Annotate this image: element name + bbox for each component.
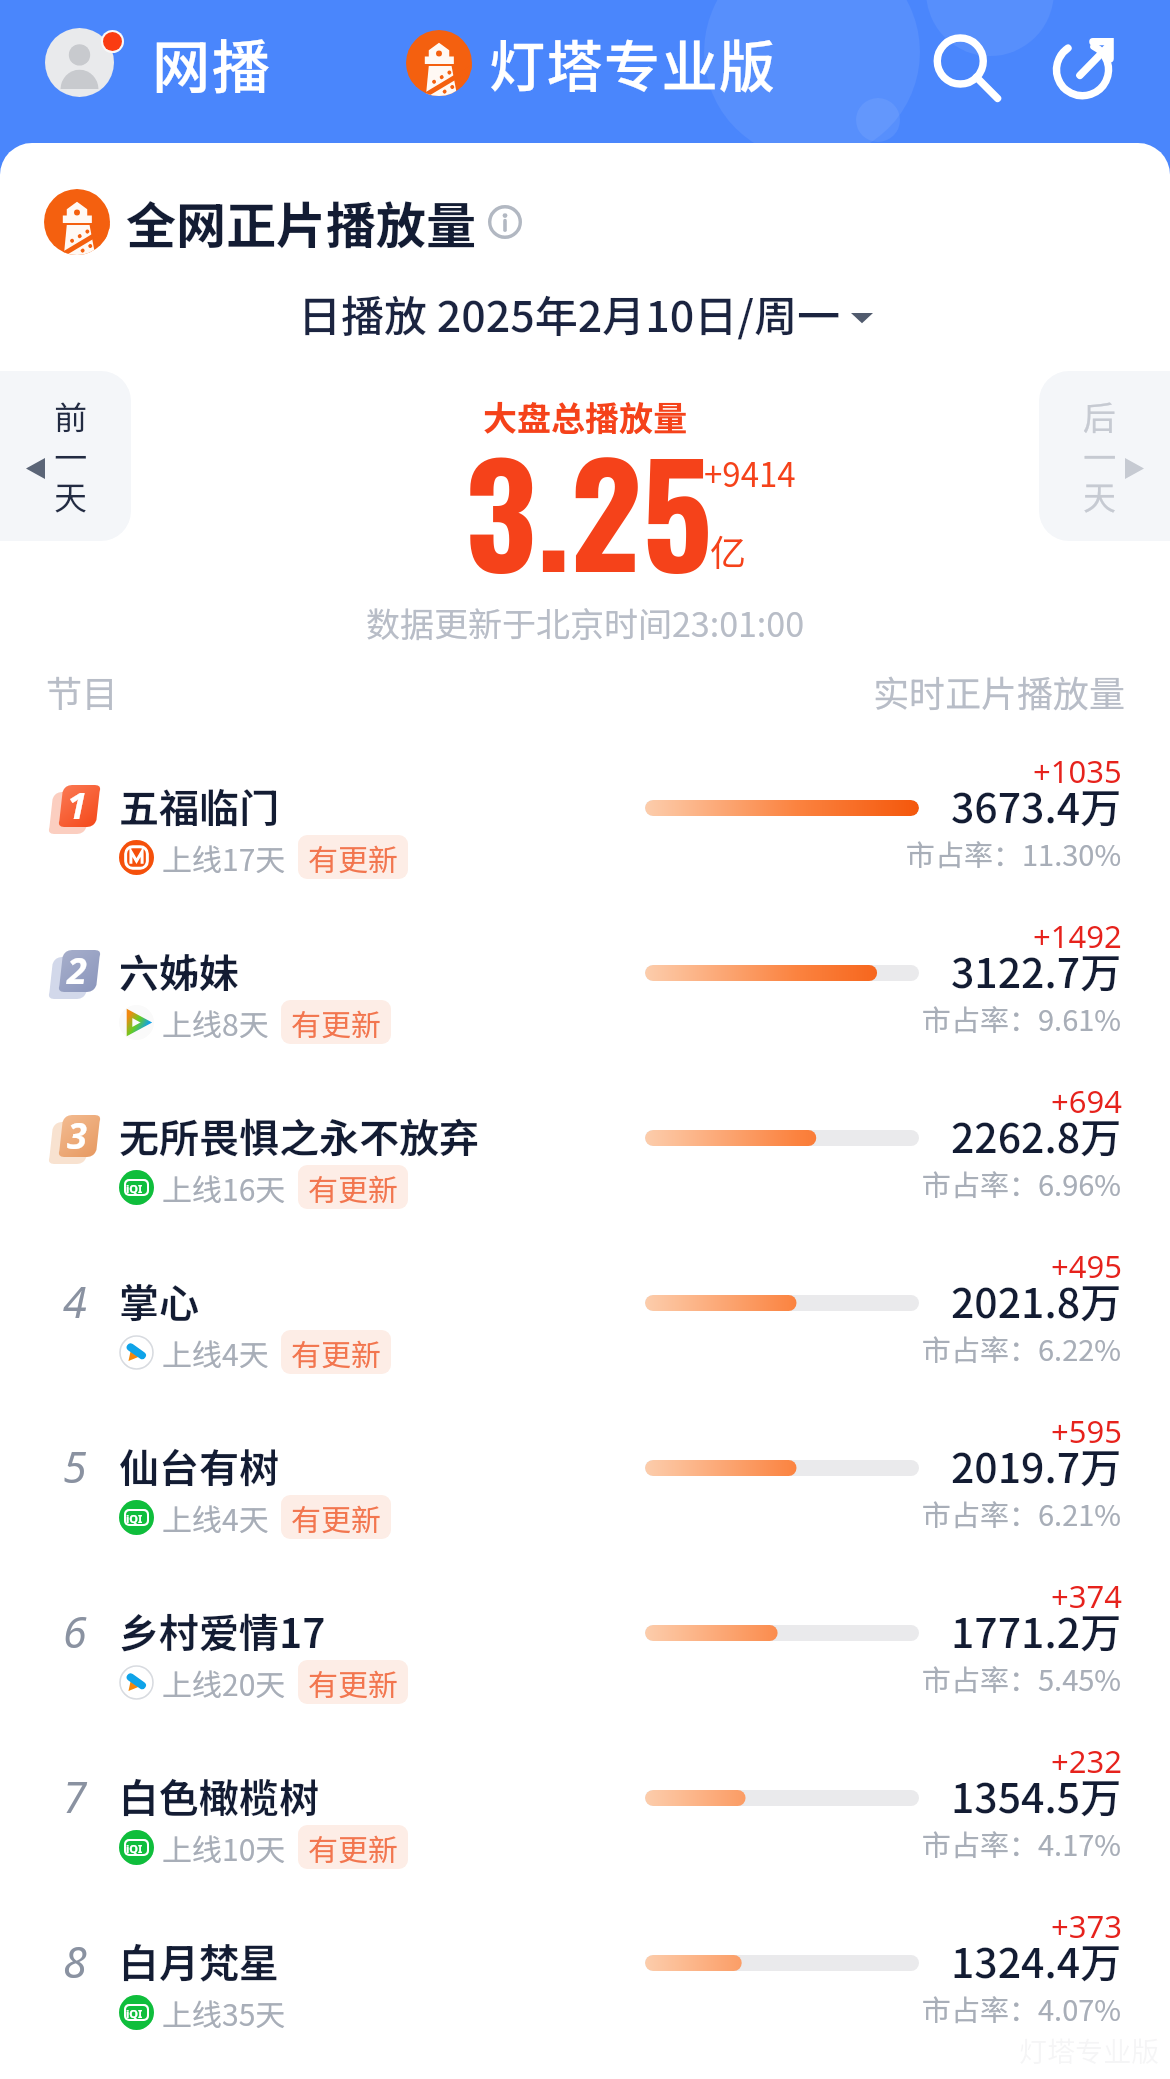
staticText: 有更新 — [308, 1826, 398, 1869]
staticText: 市占率：11.30% — [906, 832, 1122, 874]
button[interactable]: 1 — [0, 760, 1170, 925]
staticText: 后 一 天 — [1083, 392, 1116, 520]
staticText: 6 — [63, 1602, 87, 1661]
staticText: 日播放 2025年2月10日/周一 — [298, 282, 841, 344]
staticText: 全网正片播放量 — [126, 186, 476, 258]
staticText: 市占率：4.07% — [922, 1987, 1122, 2029]
button[interactable]: 6 — [0, 1585, 1170, 1750]
staticText: 六姊妹 — [119, 942, 239, 1000]
button[interactable]: Share — [1045, 26, 1125, 106]
staticText: 3122.7万 — [951, 940, 1122, 999]
staticText: +374 — [1051, 1575, 1122, 1617]
staticText: 大盘总播放量 — [0, 392, 1170, 441]
staticText: 上线4天 — [162, 1496, 269, 1539]
staticText: 白月梵星 — [119, 1932, 279, 1990]
staticText: iQIY — [126, 1841, 147, 1854]
button[interactable]: 2 — [0, 925, 1170, 1090]
staticText: 有更新 — [308, 836, 398, 879]
staticText: 上线35天 — [162, 1991, 286, 2034]
staticText: 掌心 — [119, 1272, 199, 1330]
button[interactable]: 8 — [0, 1915, 1170, 2079]
button[interactable]: 7 — [0, 1750, 1170, 1915]
staticText: 节目 — [46, 665, 119, 717]
staticText: 白色橄榄树 — [119, 1767, 319, 1825]
staticText: 市占率：5.45% — [922, 1657, 1122, 1699]
button[interactable]: 日播放 2025年2月10日/周一 — [0, 282, 1170, 344]
staticText: 市占率：6.96% — [922, 1162, 1122, 1204]
staticText: 有更新 — [308, 1661, 398, 1704]
staticText: 仙台有树 — [119, 1437, 279, 1495]
staticText: 市占率：6.22% — [922, 1327, 1122, 1369]
staticText: 灯塔专业版 — [1019, 2030, 1160, 2071]
staticText: 3 — [67, 1111, 87, 1160]
staticText: 3673.4万 — [951, 775, 1122, 834]
staticText: 五福临门 — [119, 777, 279, 835]
button[interactable]: Search — [924, 26, 1004, 106]
staticText: 2 — [67, 946, 87, 995]
staticText: 2021.8万 — [951, 1270, 1122, 1329]
staticText: 上线4天 — [162, 1331, 269, 1374]
staticText: 1354.5万 — [951, 1765, 1122, 1824]
staticText: +232 — [1051, 1740, 1122, 1782]
button[interactable]: 后 一 天 — [1039, 371, 1170, 541]
staticText: 8 — [63, 1932, 87, 1991]
staticText: 上线17天 — [162, 836, 286, 879]
staticText: +495 — [1051, 1245, 1122, 1287]
staticText: +373 — [1051, 1905, 1122, 1947]
staticText: 实时正片播放量 — [873, 665, 1126, 717]
staticText: 有更新 — [291, 1331, 381, 1374]
staticText: 2019.7万 — [951, 1435, 1122, 1494]
staticText: 无所畏惧之永不放弃 — [119, 1107, 479, 1165]
staticText: iQIY — [126, 1511, 147, 1524]
staticText: 有更新 — [291, 1496, 381, 1539]
staticText: +9414 — [704, 449, 796, 497]
staticText: 市占率：4.17% — [922, 1822, 1122, 1864]
staticText: 3.25 — [465, 406, 713, 612]
staticText: 7 — [63, 1767, 87, 1826]
staticText: 上线10天 — [162, 1826, 286, 1869]
staticText: iQIY — [126, 2006, 147, 2019]
button[interactable]: 前 一 天 — [0, 371, 131, 541]
staticText: 上线16天 — [162, 1166, 286, 1209]
staticText: 1 — [67, 781, 87, 830]
staticText: 1324.4万 — [951, 1930, 1122, 1989]
staticText: 前 一 天 — [54, 392, 87, 520]
staticText: +595 — [1051, 1410, 1122, 1452]
staticText: 上线20天 — [162, 1661, 286, 1704]
staticText: 4 — [63, 1272, 87, 1331]
staticText: 5 — [63, 1437, 87, 1496]
staticText: 亿 — [710, 524, 747, 576]
button[interactable]: 3 — [0, 1090, 1170, 1255]
staticText: +694 — [1051, 1080, 1122, 1122]
staticText: 灯塔专业版 — [489, 22, 777, 103]
staticText: 数据更新于北京时间23:01:00 — [0, 598, 1170, 647]
staticText: iQIY — [126, 1181, 147, 1194]
button[interactable]: 5 — [0, 1420, 1170, 1585]
staticText: +1492 — [1033, 915, 1122, 957]
button[interactable]: 4 — [0, 1255, 1170, 1420]
staticText: 1771.2万 — [951, 1600, 1122, 1659]
button[interactable]: Profile — [45, 28, 129, 98]
staticText: 上线8天 — [162, 1001, 269, 1044]
staticText: 网播 — [152, 21, 273, 105]
staticText: 市占率：9.61% — [922, 997, 1122, 1039]
staticText: 2262.8万 — [951, 1105, 1122, 1164]
staticText: 有更新 — [291, 1001, 381, 1044]
staticText: 市占率：6.21% — [922, 1492, 1122, 1534]
staticText: +1035 — [1033, 750, 1122, 792]
staticText: 乡村爱情17 — [119, 1602, 326, 1660]
staticText: 有更新 — [308, 1166, 398, 1209]
